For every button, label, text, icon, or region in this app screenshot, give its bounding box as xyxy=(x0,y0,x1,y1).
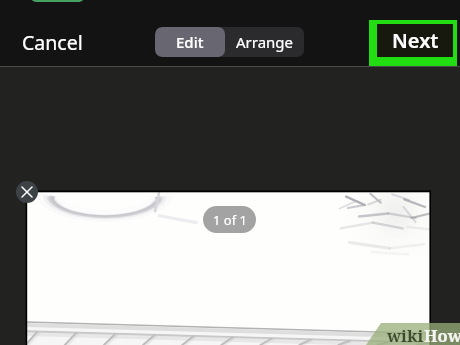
staticText: Edit xyxy=(176,32,204,52)
button[interactable]: Edit xyxy=(155,27,225,57)
button[interactable]: Next xyxy=(369,20,457,66)
staticText: wiki xyxy=(387,324,424,345)
staticText: How xyxy=(424,324,460,345)
staticText: Arrange xyxy=(236,32,294,52)
staticText: 1 of 1 xyxy=(213,211,247,229)
button[interactable]: Cancel xyxy=(12,27,93,57)
button[interactable]: Arrange xyxy=(225,27,304,57)
staticText: Next xyxy=(392,27,439,54)
button[interactable]: Remove photo xyxy=(16,181,38,203)
staticText: Cancel xyxy=(22,29,83,56)
button[interactable]: 1 of 1 xyxy=(203,206,256,233)
